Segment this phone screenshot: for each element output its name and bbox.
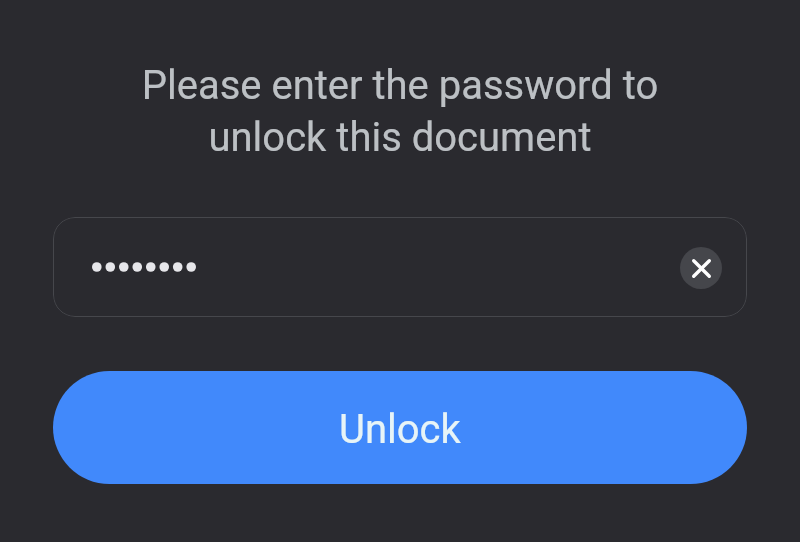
staticText: Please enter the password to unlock this… [32, 62, 768, 161]
button[interactable]: Unlock [53, 371, 747, 484]
staticText: Unlock [339, 406, 461, 453]
button[interactable]: Clear password [53, 217, 747, 317]
button[interactable]: Clear password [680, 247, 722, 289]
